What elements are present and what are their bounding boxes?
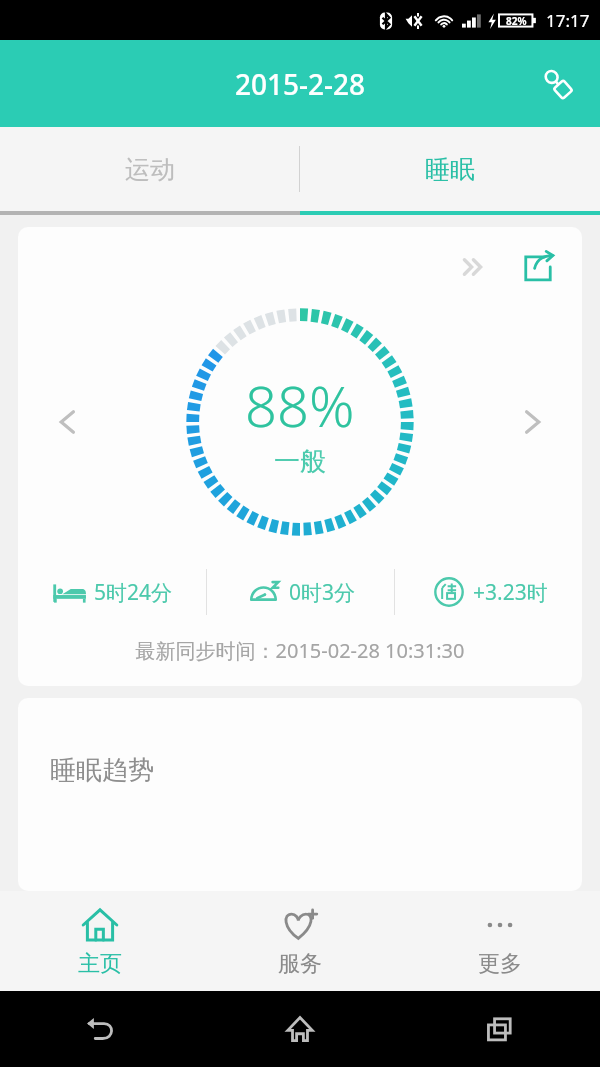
staticText: 睡眠	[425, 154, 475, 185]
staticText: 一般	[274, 445, 326, 478]
button[interactable]: 0时3分	[207, 561, 394, 623]
button[interactable]: 睡眠	[300, 127, 600, 211]
button[interactable]: +3.23时	[395, 561, 582, 623]
button[interactable]: Previous day	[40, 394, 96, 450]
staticText: 最新同步时间：2015-02-28 10:31:30	[18, 637, 582, 664]
button[interactable]: Back	[0, 991, 200, 1067]
button[interactable]: Details	[448, 241, 500, 293]
button[interactable]: 睡眠趋势	[18, 698, 582, 891]
staticText: 更多	[478, 950, 522, 978]
staticText: 0时3分	[289, 578, 356, 607]
staticText: 2015-2-28	[235, 65, 366, 103]
button[interactable]: Link device	[530, 56, 586, 112]
button[interactable]: 主页	[0, 891, 200, 991]
button[interactable]: 服务	[200, 891, 400, 991]
staticText: 5时24分	[94, 578, 173, 607]
staticText: 17:17	[546, 9, 590, 32]
staticText: 睡眠趋势	[50, 754, 154, 787]
button[interactable]: Share	[512, 241, 564, 293]
staticText: 主页	[78, 950, 122, 978]
button[interactable]: 更多	[400, 891, 600, 991]
staticText: 服务	[278, 950, 322, 978]
button[interactable]: Home	[200, 991, 400, 1067]
staticText: 88%	[245, 367, 355, 443]
button[interactable]: Next day	[504, 394, 560, 450]
staticText: 82%	[506, 14, 527, 28]
button[interactable]: 5时24分	[18, 561, 206, 623]
staticText: 运动	[125, 154, 175, 185]
staticText: +3.23时	[473, 578, 548, 607]
button[interactable]: 运动	[0, 127, 299, 211]
button[interactable]: Recent apps	[400, 991, 600, 1067]
